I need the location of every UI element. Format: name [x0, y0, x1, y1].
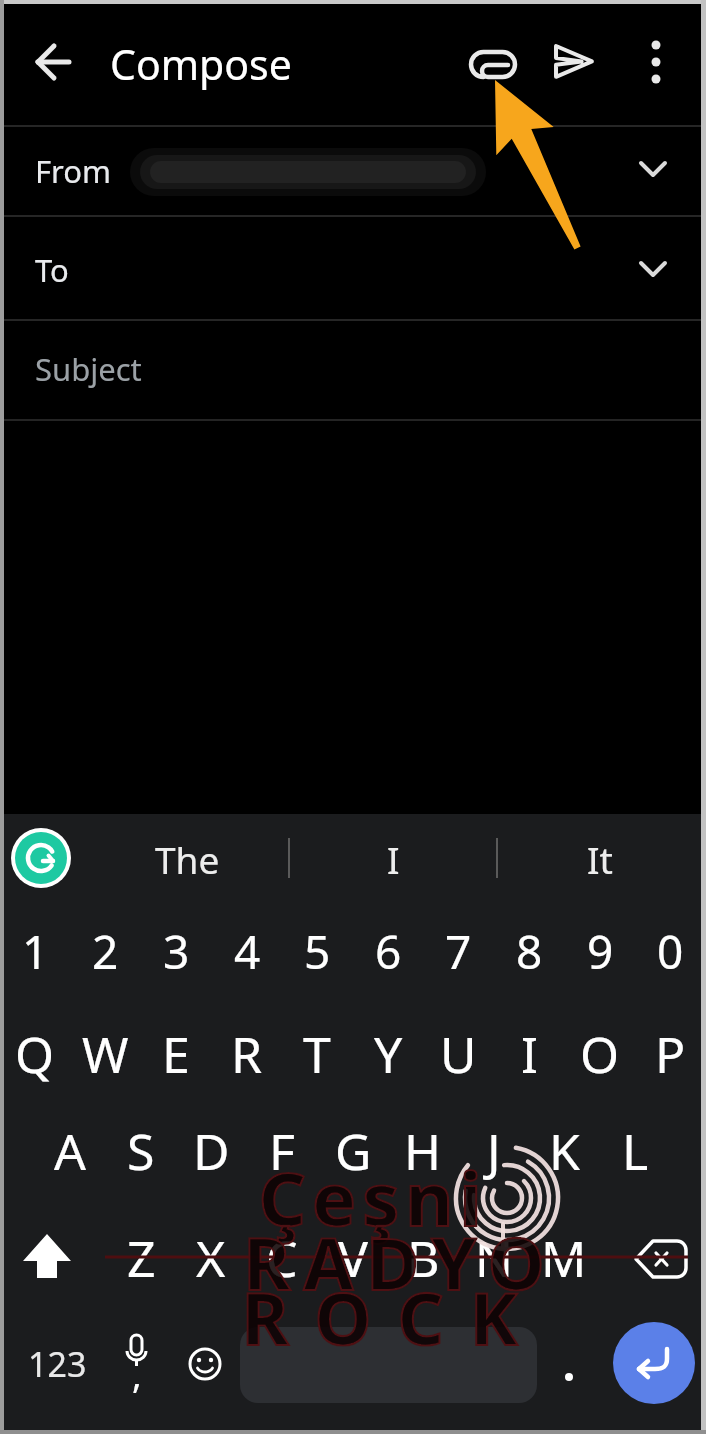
- button[interactable]: B: [368, 1208, 478, 1308]
- staticText: Z: [127, 1224, 156, 1292]
- button[interactable]: 0: [617, 903, 706, 999]
- button[interactable]: D: [156, 1101, 266, 1201]
- button[interactable]: Q: [0, 1004, 90, 1104]
- staticText: RADYO: [243, 1213, 558, 1311]
- staticText: Çeşni: [258, 1147, 488, 1248]
- staticText: B: [407, 1224, 440, 1292]
- staticText: F: [269, 1117, 295, 1185]
- staticText: N: [475, 1224, 513, 1292]
- staticText: 5: [304, 920, 331, 983]
- button[interactable]: X: [156, 1208, 266, 1308]
- staticText: Subject: [35, 348, 142, 390]
- button[interactable]: O: [545, 1004, 655, 1104]
- staticText: I: [387, 834, 400, 884]
- button[interactable]: [10, 828, 72, 890]
- button[interactable]: ,: [89, 1331, 185, 1417]
- button[interactable]: [240, 1327, 537, 1403]
- staticText: P: [655, 1020, 686, 1088]
- button[interactable]: 3: [123, 903, 229, 999]
- staticText: W: [82, 1020, 129, 1088]
- staticText: It: [587, 834, 613, 884]
- staticText: ROCK: [241, 1268, 544, 1366]
- button[interactable]: V: [298, 1208, 408, 1308]
- button[interactable]: [626, 30, 686, 96]
- staticText: 123: [28, 1341, 87, 1387]
- button[interactable]: The: [102, 815, 273, 902]
- staticText: U: [440, 1020, 477, 1088]
- staticText: To: [35, 249, 69, 291]
- staticText: Compose: [110, 36, 292, 92]
- staticText: 2: [92, 920, 119, 983]
- staticText: C: [266, 1224, 298, 1292]
- staticText: 3: [163, 920, 190, 983]
- staticText: J: [487, 1117, 501, 1185]
- staticText: Y: [374, 1020, 403, 1088]
- staticText: 4: [234, 920, 261, 983]
- button[interactable]: 2: [52, 903, 158, 999]
- staticText: RADYO: [243, 1213, 558, 1311]
- button[interactable]: F: [227, 1101, 337, 1201]
- staticText: A: [54, 1117, 86, 1185]
- button[interactable]: [20, 30, 86, 96]
- button[interactable]: [0, 216, 706, 320]
- button[interactable]: 9: [547, 903, 653, 999]
- button[interactable]: It: [533, 815, 667, 902]
- staticText: From: [35, 150, 112, 192]
- button[interactable]: 123: [28, 1322, 190, 1406]
- button[interactable]: J: [439, 1101, 549, 1201]
- staticText: R: [231, 1020, 263, 1088]
- button[interactable]: I: [474, 1004, 584, 1104]
- staticText: X: [196, 1224, 226, 1292]
- button[interactable]: [10, 1220, 90, 1300]
- button[interactable]: A: [15, 1101, 125, 1201]
- staticText: ROCK: [241, 1268, 544, 1366]
- staticText: T: [303, 1020, 331, 1088]
- button[interactable]: R: [192, 1004, 302, 1104]
- staticText: 1: [22, 920, 49, 983]
- staticText: The: [155, 834, 220, 884]
- button[interactable]: Z: [86, 1208, 196, 1308]
- button[interactable]: U: [403, 1004, 513, 1104]
- button[interactable]: W: [50, 1004, 160, 1104]
- staticText: ,: [132, 1350, 142, 1399]
- button[interactable]: [0, 320, 706, 420]
- button[interactable]: [0, 126, 706, 216]
- button[interactable]: L: [580, 1101, 690, 1201]
- button[interactable]: M: [509, 1208, 619, 1308]
- staticText: I: [521, 1020, 538, 1088]
- staticText: K: [549, 1117, 580, 1185]
- button[interactable]: [545, 1340, 595, 1390]
- button[interactable]: 6: [335, 903, 441, 999]
- button[interactable]: S: [86, 1101, 196, 1201]
- button[interactable]: N: [439, 1208, 549, 1308]
- staticText: H: [404, 1117, 442, 1185]
- staticText: L: [622, 1117, 649, 1185]
- button[interactable]: T: [262, 1004, 372, 1104]
- button[interactable]: [620, 1220, 700, 1300]
- staticText: E: [162, 1020, 190, 1088]
- staticText: 7: [445, 920, 472, 983]
- button[interactable]: I: [345, 815, 442, 902]
- button[interactable]: 7: [405, 903, 511, 999]
- staticText: Çeşni: [258, 1147, 488, 1248]
- button[interactable]: 1: [0, 903, 88, 999]
- button[interactable]: E: [121, 1004, 231, 1104]
- staticText: 6: [375, 920, 402, 983]
- button[interactable]: P: [615, 1004, 706, 1104]
- button[interactable]: 8: [476, 903, 582, 999]
- button[interactable]: H: [368, 1101, 478, 1201]
- button[interactable]: C: [227, 1208, 337, 1308]
- staticText: 8: [516, 920, 543, 983]
- staticText: 9: [587, 920, 614, 983]
- staticText: V: [338, 1224, 368, 1292]
- button[interactable]: K: [509, 1101, 619, 1201]
- button[interactable]: [540, 30, 606, 96]
- button[interactable]: Y: [333, 1004, 443, 1104]
- staticText: S: [127, 1117, 155, 1185]
- button[interactable]: 5: [264, 903, 370, 999]
- button[interactable]: [613, 1322, 695, 1404]
- button[interactable]: 4: [194, 903, 300, 999]
- button[interactable]: G: [298, 1101, 408, 1201]
- button[interactable]: [170, 1330, 240, 1400]
- button[interactable]: [458, 30, 524, 96]
